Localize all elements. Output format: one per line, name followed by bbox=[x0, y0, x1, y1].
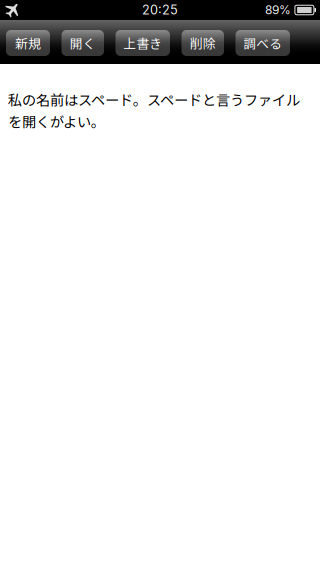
button[interactable]: 調べる bbox=[235, 30, 290, 56]
staticText: 調べる bbox=[243, 34, 282, 52]
button[interactable]: 上書き bbox=[115, 30, 170, 56]
staticText: 開く bbox=[70, 34, 96, 52]
staticText: 新規 bbox=[15, 34, 41, 52]
staticText: 削除 bbox=[190, 34, 216, 52]
staticText: 私の名前はスペード。スペードと言うファイルを開くがよい。 bbox=[8, 89, 300, 131]
button[interactable]: 新規 bbox=[6, 30, 50, 56]
staticText: 20:25 bbox=[142, 2, 178, 18]
staticText: 上書き bbox=[123, 34, 162, 52]
button[interactable]: 開く bbox=[61, 30, 104, 56]
button[interactable]: 削除 bbox=[181, 30, 224, 56]
staticText: 89% bbox=[265, 3, 291, 17]
